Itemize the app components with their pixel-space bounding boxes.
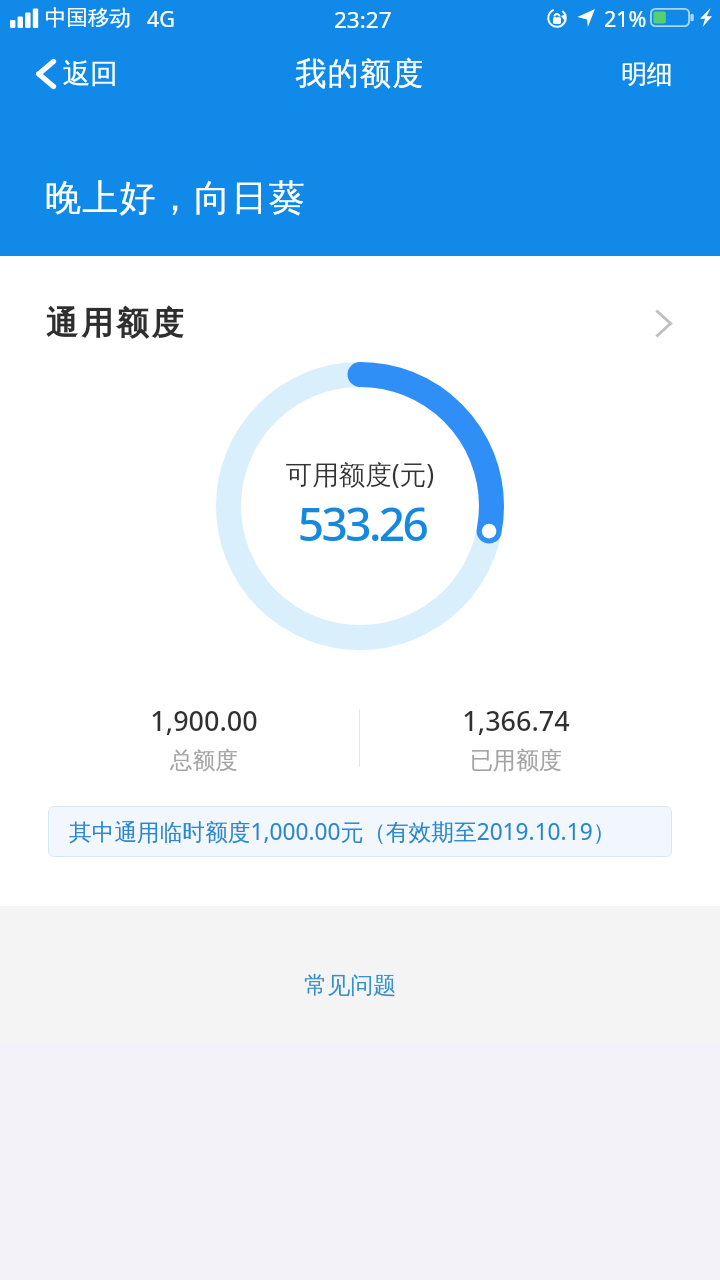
staticText: 4G [147,4,175,33]
staticText: 23:27 [334,4,392,35]
staticText: 总额度 [48,746,360,774]
staticText: 其中通用临时额度1,000.00元（有效期至2019.10.19） [69,816,616,847]
button[interactable]: 通用额度 [0,294,720,352]
button[interactable]: 明细 [600,44,720,104]
staticText: 通用额度 [46,303,187,343]
staticText: 返回 [63,57,118,92]
other: Rotation lock [547,8,567,28]
button[interactable]: 常见问题 [284,958,416,1012]
other: Available credit gauge [216,362,504,650]
other: Battery 21 percent [650,8,695,27]
staticText: 1,366.74 [360,702,672,739]
staticText: 明细 [621,58,673,91]
staticText: 可用额度(元) [0,456,720,492]
staticText: 1,900.00 [48,702,360,739]
staticText: 已用额度 [360,746,672,775]
button[interactable]: 其中通用临时额度1,000.00元（有效期至2019.10.19） [48,806,672,857]
other: Charging [700,8,712,27]
staticText: 我的额度 [0,54,720,93]
button[interactable]: 返回 [0,44,138,104]
staticText: 常见问题 [304,971,396,1000]
staticText: 晚上好，向日葵 [45,175,307,220]
staticText: 21% [604,4,647,33]
other: Location [577,9,595,27]
other: Signal strength [10,8,40,28]
staticText: 533.26 [2,492,720,555]
staticText: 中国移动 [45,4,131,31]
